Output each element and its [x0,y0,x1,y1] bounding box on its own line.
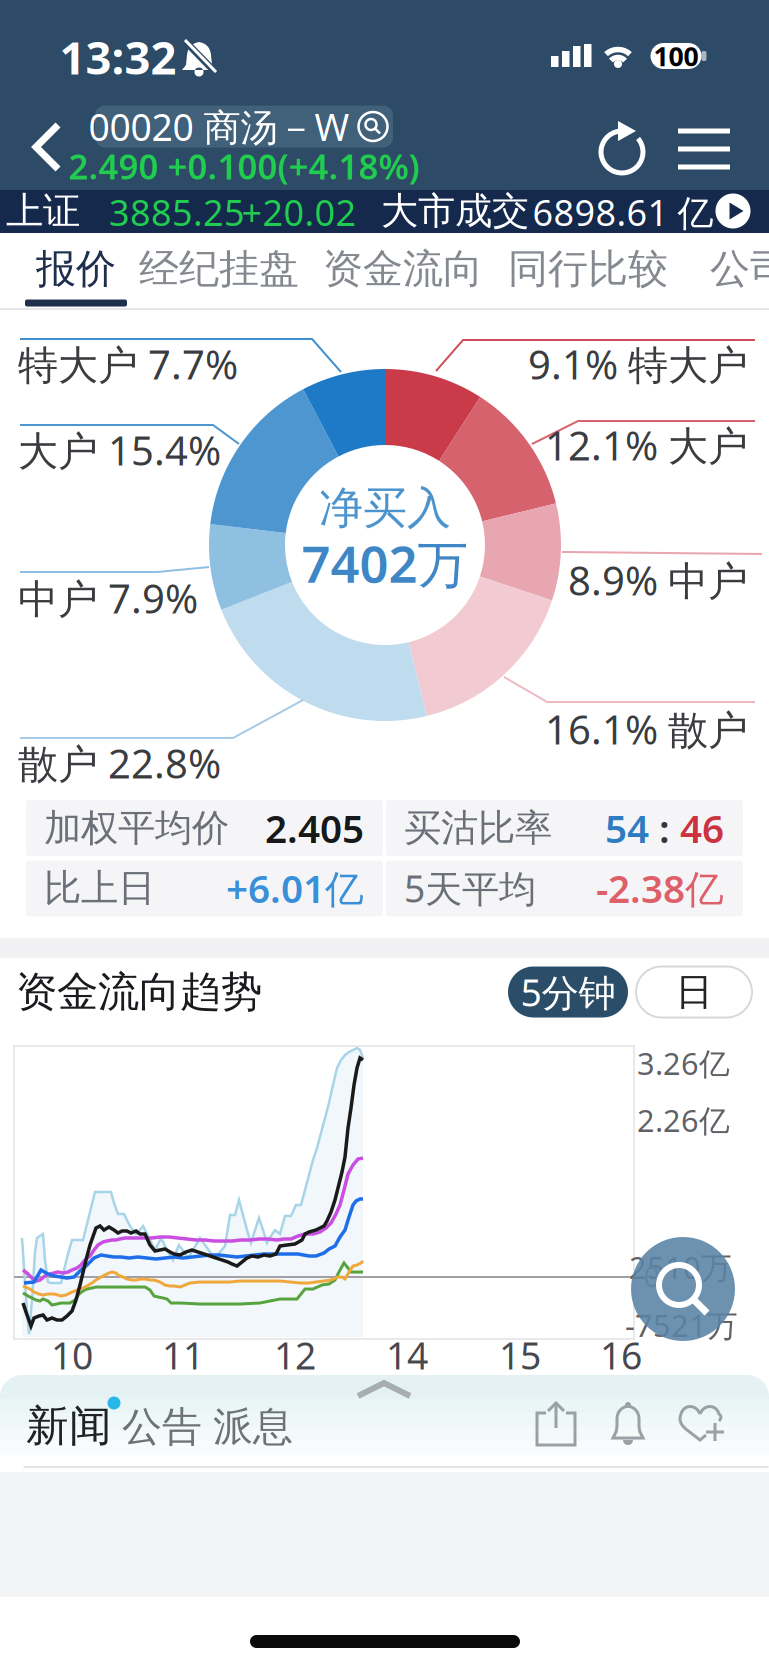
staticText: 经纪挂盘 [139,244,299,293]
staticText: 11 [162,1330,204,1380]
staticText: 100 [653,38,698,74]
staticText: -2.38亿 [596,862,724,914]
staticText: 2510万 [629,1247,732,1287]
staticText: 0 [643,1256,660,1295]
staticText: -7521万 [625,1305,738,1345]
staticText: 12.1% 大户 [545,418,748,471]
staticText: 5分钟 [520,967,615,1017]
staticText: 5天平均 [404,863,536,913]
button[interactable]: 公告 [117,1402,207,1452]
button[interactable]: Search in chart [631,1237,735,1341]
staticText: 散户 22.8% [18,736,221,789]
button[interactable]: Alerts [606,1402,650,1446]
staticText: 12 [274,1330,316,1380]
staticText: 16.1% 散户 [545,702,748,755]
button[interactable]: Collapse panel [356,1380,412,1400]
staticText: 派息 [213,1402,293,1451]
button[interactable]: 资金流向 [308,236,498,302]
staticText: 大户 15.4% [18,423,221,476]
staticText: 报价 [36,244,116,293]
staticText: 15 [499,1330,541,1380]
staticText: 3.26亿 [637,1043,730,1083]
staticText: +6.01亿 [226,862,364,914]
button[interactable]: Menu [673,125,735,172]
staticText: 比上日 [44,865,155,911]
staticText: 资金流向趋势 [16,967,262,1017]
button[interactable]: 5分钟 [508,966,628,1017]
staticText: 新闻 [26,1400,112,1452]
staticText: 2.26亿 [637,1100,730,1140]
staticText: 2.490 +0.100(+4.18%) [68,143,419,189]
staticText: 9.1% 特大户 [528,337,748,390]
staticText: 10 [51,1330,93,1380]
staticText: 6898.61 亿 [532,188,713,236]
button[interactable]: 报价 [11,236,141,302]
staticText: 00020 商汤－W [88,102,349,151]
staticText: 大市成交 [381,188,529,234]
button[interactable]: Play market broadcast [715,193,750,228]
staticText: 公告 [122,1402,202,1451]
staticText: 2.405 [265,802,364,854]
button[interactable]: Add to favourites [679,1402,727,1446]
button[interactable]: 同行比较 [493,236,683,302]
staticText: 同行比较 [508,244,668,293]
button[interactable]: Refresh [592,119,652,179]
button[interactable]: Search stock [95,105,393,147]
staticText: : [649,802,680,854]
staticText: 净买入 [319,481,451,535]
button[interactable]: 新闻 [24,1401,114,1451]
staticText: 54 [605,802,649,854]
staticText: 14 [386,1330,428,1380]
staticText: 上证 [6,188,80,234]
staticText: 特大户 7.7% [18,337,238,390]
staticText: +20.02 [241,188,356,236]
button[interactable]: 日 [636,966,752,1017]
button[interactable]: 派息 [208,1402,298,1452]
staticText: 46 [680,802,724,854]
staticText: 公司资料 [710,244,769,293]
staticText: 中户 7.9% [18,571,198,624]
button[interactable]: 公司资料 [710,236,769,302]
staticText: 13:32 [59,27,176,87]
staticText: 加权平均价 [44,805,229,851]
button[interactable]: Share [533,1402,579,1448]
staticText: 7402万 [301,529,468,597]
staticText: 3885.25 [109,188,245,236]
button[interactable]: 经纪挂盘 [124,236,314,302]
staticText: 8.9% 中户 [568,553,748,606]
staticText: 买沽比率 [404,805,552,851]
staticText: 16 [600,1330,642,1380]
staticText: 资金流向 [323,244,483,293]
staticText: 日 [675,969,712,1015]
